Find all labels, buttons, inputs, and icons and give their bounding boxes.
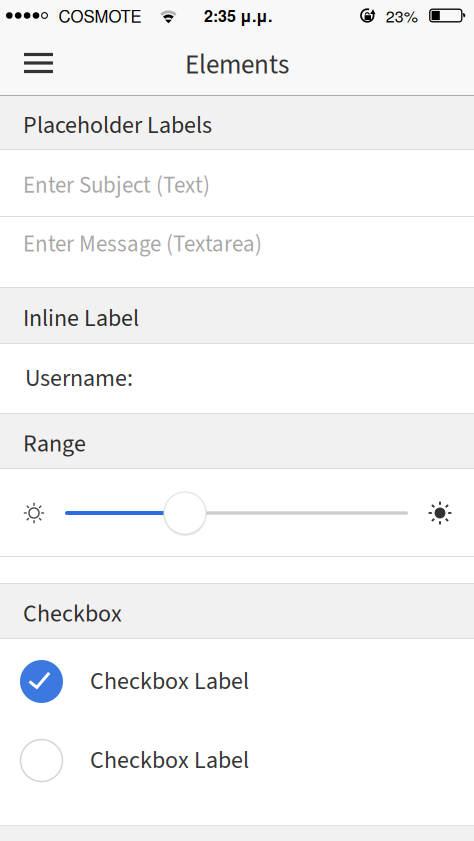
staticText: Placeholder Labels xyxy=(23,108,212,143)
button[interactable]: Menu xyxy=(0,43,53,83)
staticText: Enter Subject (Text) xyxy=(23,169,210,202)
staticText: Elements xyxy=(185,46,289,84)
staticText: Checkbox Label xyxy=(90,743,249,778)
staticText: Range xyxy=(23,427,86,461)
staticText: 2:35 μ.μ. xyxy=(204,4,272,27)
staticText: Enter Message (Textarea) xyxy=(23,228,262,261)
staticText: COSMOTE xyxy=(58,4,141,27)
button[interactable]: Checkbox Label xyxy=(0,719,474,797)
staticText: Inline Label xyxy=(23,301,139,336)
staticText: 23% xyxy=(386,4,418,27)
button[interactable]: Enter Message (Textarea) xyxy=(0,217,474,287)
staticText: Checkbox xyxy=(23,597,122,631)
button[interactable]: Username: xyxy=(0,344,474,413)
button[interactable]: Brightness slider xyxy=(163,491,207,535)
staticText: Checkbox Label xyxy=(90,664,249,699)
button[interactable]: Enter Subject (Text) xyxy=(0,150,474,216)
staticText: Username: xyxy=(25,361,133,396)
button[interactable]: Checkbox Label xyxy=(0,639,474,719)
